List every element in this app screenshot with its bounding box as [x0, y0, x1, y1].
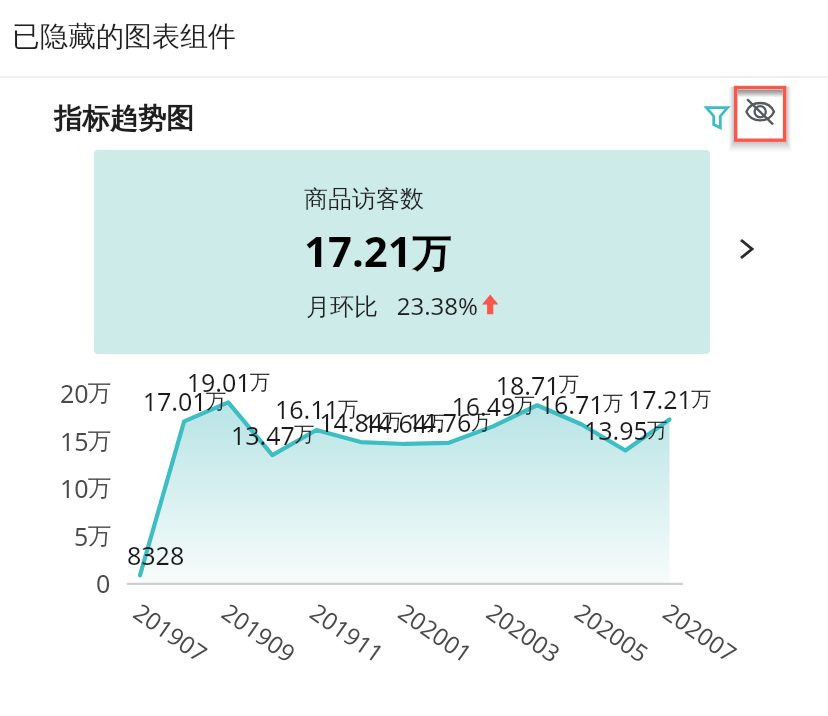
staticText: 已隐藏的图表组件 [12, 19, 236, 54]
button[interactable]: More [728, 228, 768, 268]
staticText: 万 [412, 229, 451, 278]
staticText: 17.21 [304, 222, 412, 279]
button[interactable]: Filter [705, 102, 733, 132]
staticText: 商品访客数 [304, 184, 424, 214]
button[interactable]: 商品访客数 [94, 150, 710, 354]
staticText: 月环比 23.38% [306, 289, 479, 322]
staticText: 指标趋势图 [54, 101, 194, 136]
button[interactable]: Hide chart [728, 80, 792, 150]
